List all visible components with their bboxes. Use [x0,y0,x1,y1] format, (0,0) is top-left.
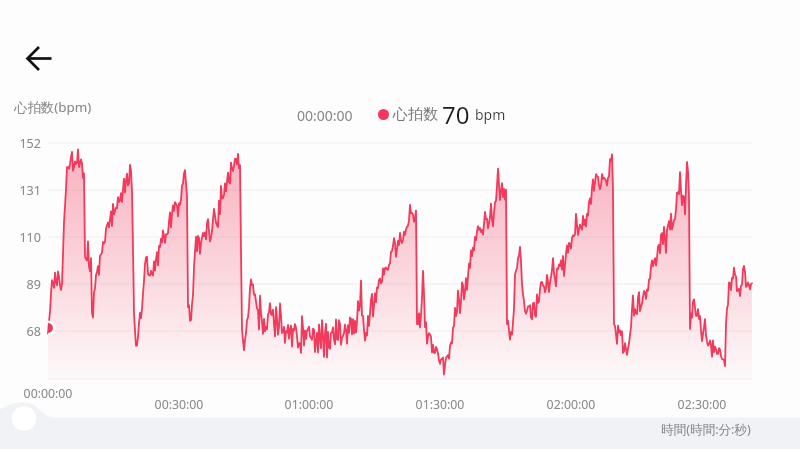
staticText: bpm [475,105,506,124]
staticText: 152 [0,135,41,152]
staticText: 心拍数(bpm) [14,98,92,116]
staticText: 00:00:00 [297,106,353,125]
staticText: 89 [0,276,41,293]
staticText: 01:30:00 [395,396,485,413]
staticText: 02:30:00 [657,396,747,413]
staticText: 00:30:00 [134,396,224,413]
staticText: 110 [0,229,41,246]
staticText: 時間(時間:分:秒) [661,421,751,438]
staticText: 02:00:00 [526,396,616,413]
staticText: 68 [0,323,41,340]
button[interactable]: Back [10,34,58,82]
staticText: 131 [0,182,41,199]
staticText: 70 [442,98,470,131]
staticText: 心拍数 [393,105,438,124]
staticText: 00:00:00 [3,385,93,402]
staticText: 01:00:00 [264,396,354,413]
